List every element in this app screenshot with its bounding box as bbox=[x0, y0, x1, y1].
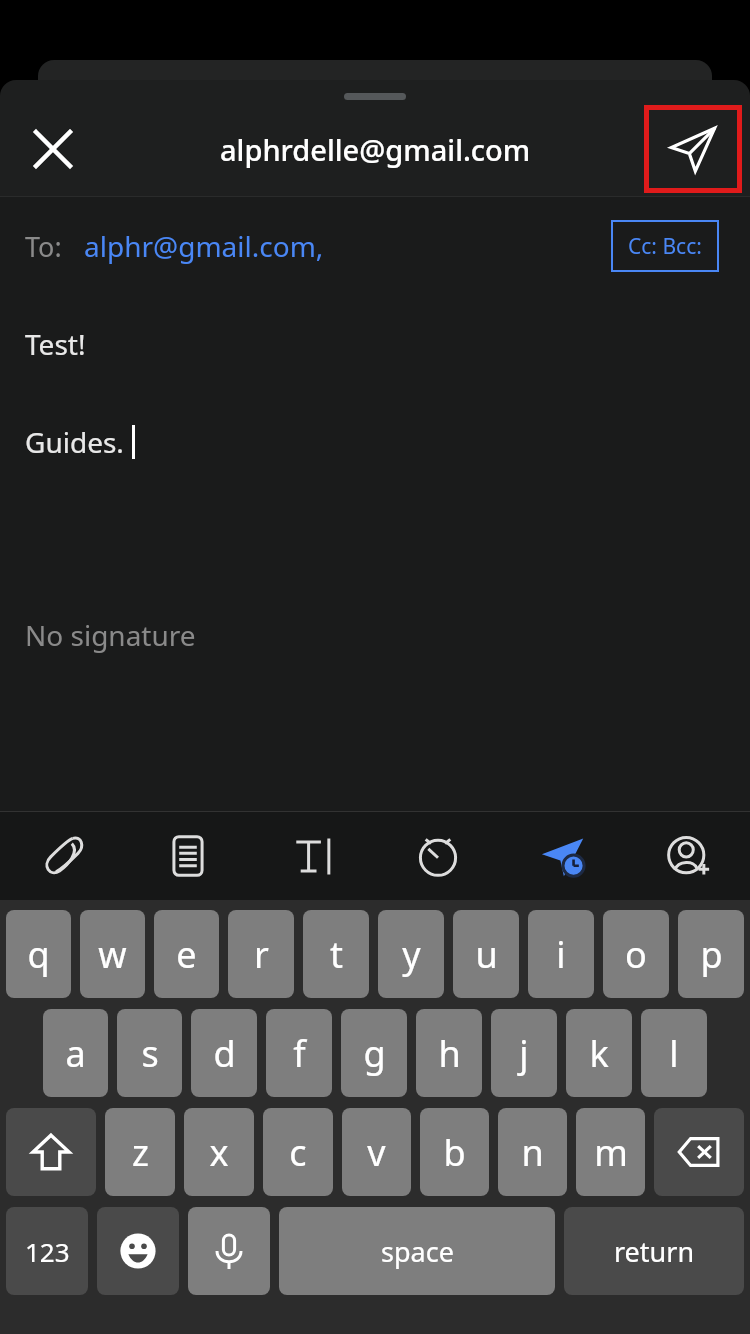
button[interactable]: space bbox=[279, 1207, 555, 1295]
button[interactable]: n bbox=[498, 1108, 567, 1196]
staticText: n bbox=[521, 1128, 544, 1177]
staticText: t bbox=[330, 930, 343, 979]
staticText: Cc: Bcc: bbox=[628, 232, 702, 261]
button[interactable]: g bbox=[341, 1009, 407, 1097]
staticText: Guides. bbox=[25, 423, 132, 461]
button[interactable]: Send bbox=[649, 110, 737, 188]
staticText: p bbox=[700, 930, 723, 979]
staticText: s bbox=[141, 1029, 159, 1078]
staticText: b bbox=[443, 1128, 466, 1177]
staticText: a bbox=[65, 1029, 86, 1078]
button[interactable]: j bbox=[491, 1009, 557, 1097]
staticText: d bbox=[213, 1029, 236, 1078]
button[interactable]: k bbox=[566, 1009, 632, 1097]
staticText: z bbox=[132, 1128, 149, 1177]
button[interactable]: z bbox=[105, 1108, 175, 1196]
staticText: g bbox=[363, 1029, 386, 1078]
button[interactable]: r bbox=[228, 910, 294, 998]
button[interactable]: Remind me bbox=[375, 812, 500, 900]
button[interactable]: d bbox=[191, 1009, 257, 1097]
staticText: u bbox=[475, 930, 498, 979]
button[interactable]: f bbox=[266, 1009, 332, 1097]
button[interactable]: m bbox=[576, 1108, 645, 1196]
button[interactable]: e bbox=[154, 910, 219, 998]
staticText: return bbox=[614, 1233, 695, 1270]
staticText: 123 bbox=[25, 1234, 70, 1269]
button[interactable]: h bbox=[416, 1009, 482, 1097]
button[interactable]: Emoji bbox=[97, 1207, 179, 1295]
button[interactable]: v bbox=[342, 1108, 411, 1196]
staticText: o bbox=[625, 930, 647, 979]
staticText: alphrdelle@gmail.com bbox=[220, 130, 531, 169]
button[interactable]: Format text bbox=[250, 812, 375, 900]
staticText: y bbox=[402, 930, 421, 979]
staticText: v bbox=[367, 1128, 386, 1177]
staticText: e bbox=[176, 930, 197, 979]
staticText: alphr@gmail.com, bbox=[84, 227, 324, 265]
button[interactable]: Document bbox=[125, 812, 250, 900]
button[interactable]: t bbox=[303, 910, 369, 998]
button[interactable]: q bbox=[6, 910, 71, 998]
staticText: r bbox=[254, 930, 269, 979]
button[interactable]: Dictation bbox=[188, 1207, 270, 1295]
button[interactable]: s bbox=[117, 1009, 182, 1097]
staticText: q bbox=[27, 930, 50, 979]
button[interactable]: Cc: Bcc: bbox=[613, 222, 717, 270]
staticText: m bbox=[594, 1128, 628, 1177]
staticText: To: bbox=[25, 228, 62, 265]
button[interactable]: l bbox=[641, 1009, 707, 1097]
button[interactable]: i bbox=[528, 910, 594, 998]
button[interactable]: 123 bbox=[6, 1207, 88, 1295]
staticText: w bbox=[98, 930, 127, 979]
button[interactable]: return bbox=[564, 1207, 744, 1295]
button[interactable]: Shift bbox=[6, 1108, 96, 1196]
button[interactable]: Backspace bbox=[654, 1108, 744, 1196]
staticText: i bbox=[556, 930, 566, 979]
button[interactable]: a bbox=[43, 1009, 108, 1097]
button[interactable]: b bbox=[420, 1108, 489, 1196]
staticText: No signature bbox=[25, 616, 196, 654]
staticText: x bbox=[209, 1128, 229, 1177]
staticText: l bbox=[669, 1029, 679, 1078]
button[interactable]: Send later bbox=[500, 812, 625, 900]
button[interactable]: p bbox=[678, 910, 744, 998]
button[interactable]: x bbox=[184, 1108, 254, 1196]
staticText: Test! bbox=[25, 325, 86, 363]
button[interactable]: Close bbox=[22, 118, 84, 180]
staticText: space bbox=[381, 1233, 454, 1270]
button[interactable]: c bbox=[263, 1108, 333, 1196]
staticText: k bbox=[589, 1029, 609, 1078]
button[interactable]: w bbox=[80, 910, 145, 998]
button[interactable]: Add contact bbox=[625, 812, 750, 900]
staticText: f bbox=[293, 1029, 306, 1078]
staticText: c bbox=[289, 1128, 307, 1177]
staticText: j bbox=[519, 1029, 529, 1078]
button[interactable]: o bbox=[603, 910, 669, 998]
button[interactable]: Attach bbox=[0, 812, 125, 900]
button[interactable]: u bbox=[453, 910, 519, 998]
staticText: h bbox=[438, 1029, 461, 1078]
button[interactable]: y bbox=[378, 910, 444, 998]
